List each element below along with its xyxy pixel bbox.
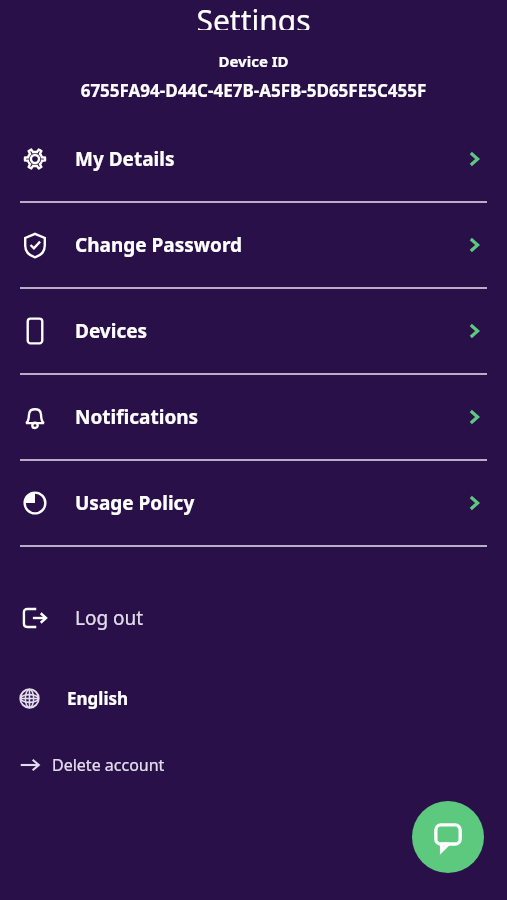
staticText: Log out	[75, 605, 144, 631]
button[interactable]: Log out	[0, 592, 507, 644]
button[interactable]: Change Password	[0, 212, 507, 278]
button[interactable]: Open chat support	[412, 801, 484, 873]
staticText: Notifications	[75, 404, 199, 430]
staticText: Device ID	[0, 51, 507, 71]
staticText: 6755FA94-D44C-4E7B-A5FB-5D65FE5C455F	[0, 79, 507, 102]
staticText: Change Password	[75, 232, 243, 258]
staticText: Devices	[75, 318, 148, 344]
button[interactable]: Notifications	[0, 384, 507, 450]
button[interactable]: English	[0, 676, 507, 720]
staticText: English	[67, 687, 129, 710]
button[interactable]: Devices	[0, 298, 507, 364]
button[interactable]: My Details	[0, 126, 507, 192]
staticText: Settings	[196, 0, 311, 30]
staticText: My Details	[75, 146, 175, 172]
button[interactable]: Delete account	[0, 744, 507, 786]
staticText: Usage Policy	[75, 490, 195, 516]
staticText: Delete account	[52, 754, 165, 776]
button[interactable]: Usage Policy	[0, 470, 507, 536]
